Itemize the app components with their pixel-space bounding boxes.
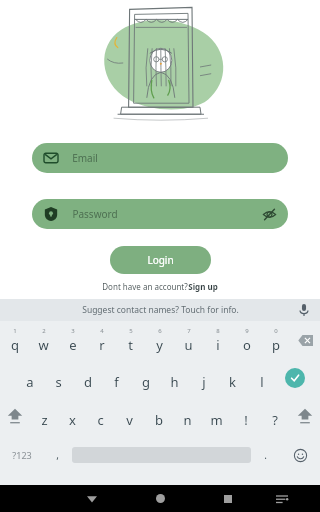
button[interactable]: Sign up (188, 281, 218, 292)
button[interactable]: s (44, 359, 73, 397)
staticText: g (142, 373, 150, 391)
staticText: e (69, 336, 77, 354)
button[interactable]: . (251, 435, 280, 475)
staticText: b (155, 411, 163, 429)
button[interactable]: l (247, 359, 276, 397)
button[interactable]: Enter (276, 359, 314, 397)
button[interactable]: Emoji (280, 435, 320, 475)
button[interactable]: ? (260, 397, 289, 435)
staticText: 1 (13, 327, 17, 335)
staticText: 5 (129, 327, 133, 335)
staticText: Suggest contact names? Touch for info. (82, 304, 239, 316)
button[interactable]: 6 (145, 321, 174, 359)
staticText: r (99, 336, 105, 354)
staticText: o (243, 336, 251, 354)
button[interactable]: Back (76, 485, 108, 512)
staticText: Password (72, 207, 118, 221)
staticText: a (26, 373, 34, 391)
staticText: l (260, 373, 264, 391)
button[interactable]: g (131, 359, 160, 397)
button[interactable]: Email (32, 143, 288, 173)
staticText: 7 (187, 327, 191, 335)
button[interactable]: v (115, 397, 144, 435)
staticText: 2 (42, 327, 46, 335)
button[interactable]: b (144, 397, 173, 435)
staticText: z (41, 411, 48, 429)
button[interactable]: Home (144, 485, 176, 512)
button[interactable]: 4 (87, 321, 116, 359)
staticText: Sign up (188, 281, 218, 292)
staticText: w (38, 336, 49, 354)
staticText: ? (272, 411, 278, 429)
button[interactable]: k (218, 359, 247, 397)
button[interactable]: 7 (174, 321, 203, 359)
button[interactable]: h (160, 359, 189, 397)
staticText: Dont have an account? (102, 281, 188, 292)
button[interactable]: Password (32, 199, 288, 229)
button[interactable]: , (43, 435, 72, 475)
button[interactable]: 2 (29, 321, 58, 359)
button[interactable]: 5 (116, 321, 145, 359)
staticText: k (229, 373, 236, 391)
button[interactable]: 1 (0, 321, 29, 359)
staticText: 4 (100, 327, 104, 335)
button[interactable]: Suggest contact names? Touch for info. (0, 299, 320, 321)
button[interactable]: Shift (289, 397, 320, 435)
button[interactable]: z (30, 397, 58, 435)
staticText: h (170, 373, 179, 391)
button[interactable]: ?123 (0, 435, 43, 475)
staticText: t (128, 336, 133, 354)
staticText: f (114, 373, 119, 391)
staticText: p (272, 336, 280, 354)
button[interactable]: m (202, 397, 231, 435)
button[interactable]: 8 (203, 321, 232, 359)
staticText: 6 (158, 327, 162, 335)
button[interactable]: x (58, 397, 86, 435)
staticText: ?123 (12, 449, 32, 461)
staticText: i (216, 336, 220, 354)
button[interactable]: 3 (58, 321, 87, 359)
button[interactable]: 0 (261, 321, 290, 359)
staticText: , (56, 448, 59, 462)
staticText: m (210, 411, 223, 429)
staticText: Email (72, 151, 98, 165)
button[interactable]: Show password (256, 201, 282, 227)
button[interactable]: f (102, 359, 131, 397)
button[interactable]: 9 (232, 321, 261, 359)
staticText: . (264, 448, 267, 462)
staticText: ! (244, 411, 248, 429)
staticText: 8 (216, 327, 220, 335)
button[interactable]: n (173, 397, 202, 435)
staticText: j (202, 373, 206, 391)
staticText: q (11, 336, 19, 354)
staticText: x (69, 411, 76, 429)
button[interactable]: a (15, 359, 44, 397)
button[interactable]: d (73, 359, 102, 397)
button[interactable]: j (189, 359, 218, 397)
staticText: u (184, 336, 193, 354)
staticText: v (126, 411, 133, 429)
button[interactable]: Shift (0, 397, 30, 435)
staticText: c (97, 411, 104, 429)
button[interactable]: Login (110, 246, 211, 274)
staticText: 3 (71, 327, 75, 335)
staticText: y (156, 336, 163, 354)
button[interactable]: Switch keyboard (266, 485, 298, 512)
staticText: n (183, 411, 192, 429)
staticText: 9 (245, 327, 249, 335)
staticText: Login (147, 253, 174, 267)
button[interactable]: c (86, 397, 115, 435)
staticText: s (55, 373, 62, 391)
button[interactable]: Recents (212, 485, 244, 512)
staticText: d (84, 373, 92, 391)
button[interactable]: ! (231, 397, 260, 435)
button[interactable]: Backspace (290, 321, 320, 359)
button[interactable]: Voice input (294, 300, 314, 320)
staticText: 0 (274, 327, 278, 335)
